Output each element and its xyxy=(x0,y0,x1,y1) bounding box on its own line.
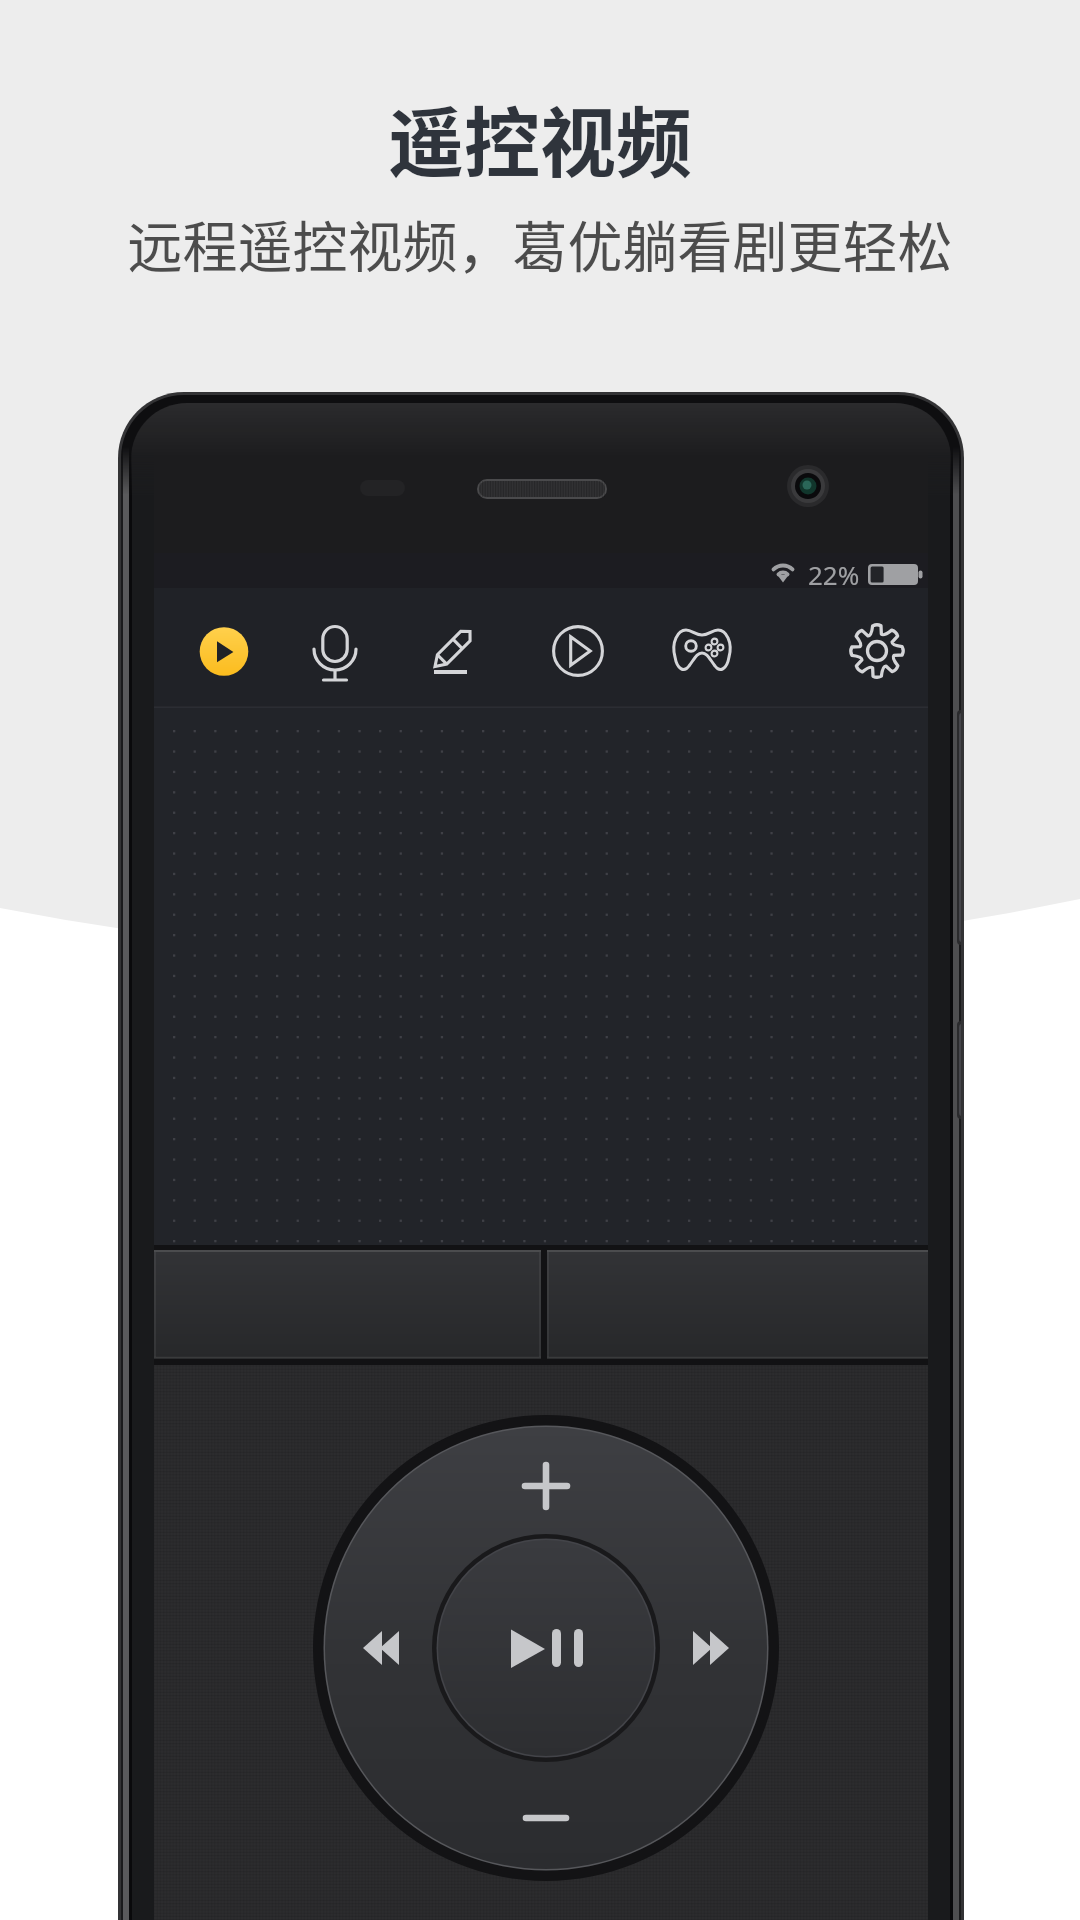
button[interactable]: Volume up xyxy=(500,1420,592,1512)
button[interactable]: Previous xyxy=(330,1602,430,1694)
button[interactable]: Handwriting input xyxy=(411,608,499,696)
button[interactable]: Games xyxy=(654,608,742,696)
button[interactable]: Back xyxy=(547,1250,932,1359)
button[interactable]: Media player xyxy=(533,608,621,696)
button[interactable]: Volume down xyxy=(500,1776,592,1868)
button[interactable]: Play or pause xyxy=(480,1582,612,1714)
staticText: 22% xyxy=(808,557,860,592)
button[interactable]: Next xyxy=(662,1602,762,1694)
staticText: 遥控视频 xyxy=(0,83,1080,1920)
button[interactable]: Settings xyxy=(833,608,921,696)
button[interactable]: Menu xyxy=(154,1250,541,1359)
button[interactable]: Video remote xyxy=(180,608,268,696)
staticText: 远程遥控视频，葛优躺看剧更轻松 xyxy=(0,203,1080,1920)
button[interactable]: Voice input xyxy=(291,608,379,696)
